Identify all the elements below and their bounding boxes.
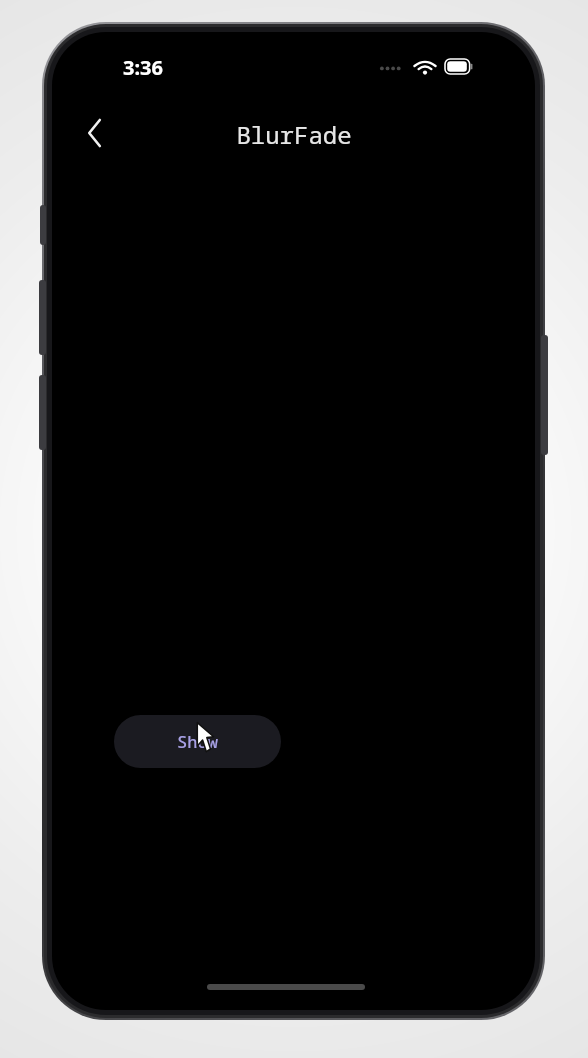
button[interactable]: Back (73, 111, 117, 155)
staticText: BlurFade (236, 118, 352, 151)
staticText: Show (177, 730, 218, 753)
button[interactable]: Show (114, 715, 281, 768)
staticText: 3:36 (123, 54, 163, 81)
